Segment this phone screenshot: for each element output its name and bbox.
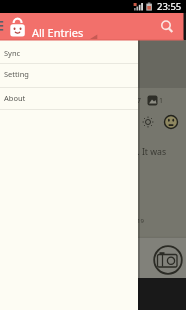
button[interactable] (0, 13, 100, 40)
staticText: 23:55 (157, 0, 182, 13)
staticText: Sync (4, 48, 21, 58)
button[interactable]: Sync (0, 40, 138, 63)
staticText: All Entries (32, 25, 84, 40)
staticText: 7 (137, 96, 142, 106)
staticText: About (4, 93, 26, 103)
staticText: g. It was (132, 146, 167, 158)
staticText: 1 (159, 96, 164, 106)
button[interactable] (154, 246, 182, 274)
staticText: Setting (4, 69, 29, 79)
button[interactable]: Setting (0, 63, 138, 87)
staticText: 19 (137, 217, 144, 225)
button[interactable] (152, 13, 182, 40)
button[interactable]: About (0, 88, 138, 110)
